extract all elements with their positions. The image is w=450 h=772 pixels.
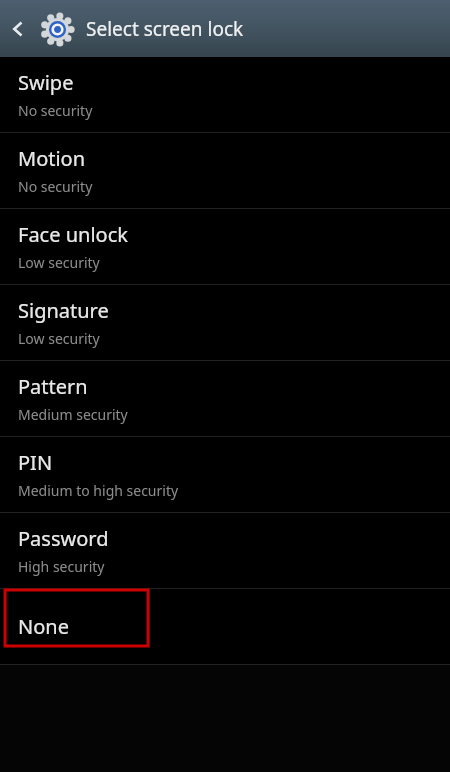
staticText: No security xyxy=(18,101,93,120)
button[interactable]: Swipe xyxy=(0,57,450,132)
button[interactable]: Back xyxy=(0,0,36,57)
staticText: Signature xyxy=(18,297,109,324)
staticText: Motion xyxy=(18,145,86,172)
staticText: None xyxy=(18,613,69,640)
staticText: No security xyxy=(18,177,93,196)
staticText: Low security xyxy=(18,329,100,348)
button[interactable]: Motion xyxy=(0,133,450,208)
staticText: Face unlock xyxy=(18,221,128,248)
staticText: Password xyxy=(18,525,109,552)
staticText: Medium security xyxy=(18,405,128,424)
staticText: PIN xyxy=(18,449,53,476)
staticText: Pattern xyxy=(18,373,88,400)
button[interactable]: Signature xyxy=(0,285,450,360)
button[interactable]: Password xyxy=(0,513,450,588)
staticText: Medium to high security xyxy=(18,481,179,500)
staticText: High security xyxy=(18,557,105,576)
button[interactable]: Pattern xyxy=(0,361,450,436)
staticText: Select screen lock xyxy=(86,16,244,42)
button[interactable]: PIN xyxy=(0,437,450,512)
button[interactable]: Face unlock xyxy=(0,209,450,284)
staticText: Low security xyxy=(18,253,100,272)
staticText: Swipe xyxy=(18,69,74,96)
button[interactable]: None xyxy=(0,589,450,664)
